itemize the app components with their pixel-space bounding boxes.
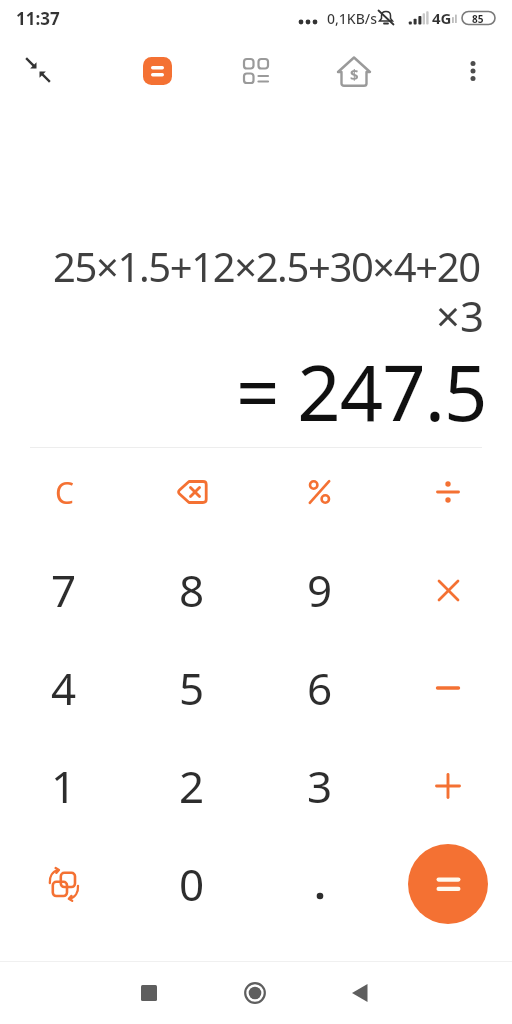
button[interactable]: 3 xyxy=(256,737,384,835)
button[interactable]: 8 xyxy=(128,541,256,639)
button[interactable]: 0 xyxy=(128,835,256,933)
staticText: 6 xyxy=(307,658,333,718)
button[interactable] xyxy=(384,443,512,541)
button[interactable] xyxy=(125,969,173,1017)
button[interactable] xyxy=(449,47,497,95)
staticText: 11:37 xyxy=(16,7,60,30)
button[interactable]: C xyxy=(0,443,128,541)
button[interactable]: 5 xyxy=(128,639,256,737)
button[interactable]: 2 xyxy=(128,737,256,835)
button[interactable] xyxy=(384,541,512,639)
button[interactable]: 1 xyxy=(0,737,128,835)
button[interactable] xyxy=(232,47,280,95)
button[interactable]: $ xyxy=(330,47,378,95)
staticText: C xyxy=(55,472,74,513)
button[interactable] xyxy=(0,835,128,933)
staticText: 5 xyxy=(179,658,205,718)
button[interactable] xyxy=(14,47,62,95)
button[interactable] xyxy=(128,443,256,541)
button[interactable] xyxy=(336,969,384,1017)
staticText: 7 xyxy=(51,560,77,620)
staticText: $ xyxy=(350,64,359,84)
staticText: 0 xyxy=(179,854,205,914)
staticText: 0,1KB/s xyxy=(327,9,378,28)
button[interactable] xyxy=(143,57,172,85)
button[interactable]: 9 xyxy=(256,541,384,639)
button[interactable] xyxy=(384,835,512,933)
staticText: 9 xyxy=(307,560,333,620)
button[interactable]: 4 xyxy=(0,639,128,737)
button[interactable] xyxy=(256,443,384,541)
staticText: 3 xyxy=(307,756,333,816)
staticText: 1 xyxy=(51,756,77,816)
button[interactable] xyxy=(384,639,512,737)
button[interactable] xyxy=(256,835,384,933)
staticText: 8 xyxy=(179,560,205,620)
staticText: 2 xyxy=(179,756,205,816)
staticText: = 247.5 xyxy=(236,340,487,444)
staticText: 85 xyxy=(472,12,484,26)
button[interactable]: 6 xyxy=(256,639,384,737)
button[interactable] xyxy=(384,737,512,835)
staticText: 4 xyxy=(51,658,77,718)
staticText: 4G xyxy=(432,8,452,28)
button[interactable] xyxy=(231,969,279,1017)
button[interactable] xyxy=(408,844,488,924)
button[interactable]: 7 xyxy=(0,541,128,639)
staticText: ×3 xyxy=(436,287,485,344)
staticText: 25×1.5+12×2.5+30×4+20 xyxy=(53,239,480,293)
